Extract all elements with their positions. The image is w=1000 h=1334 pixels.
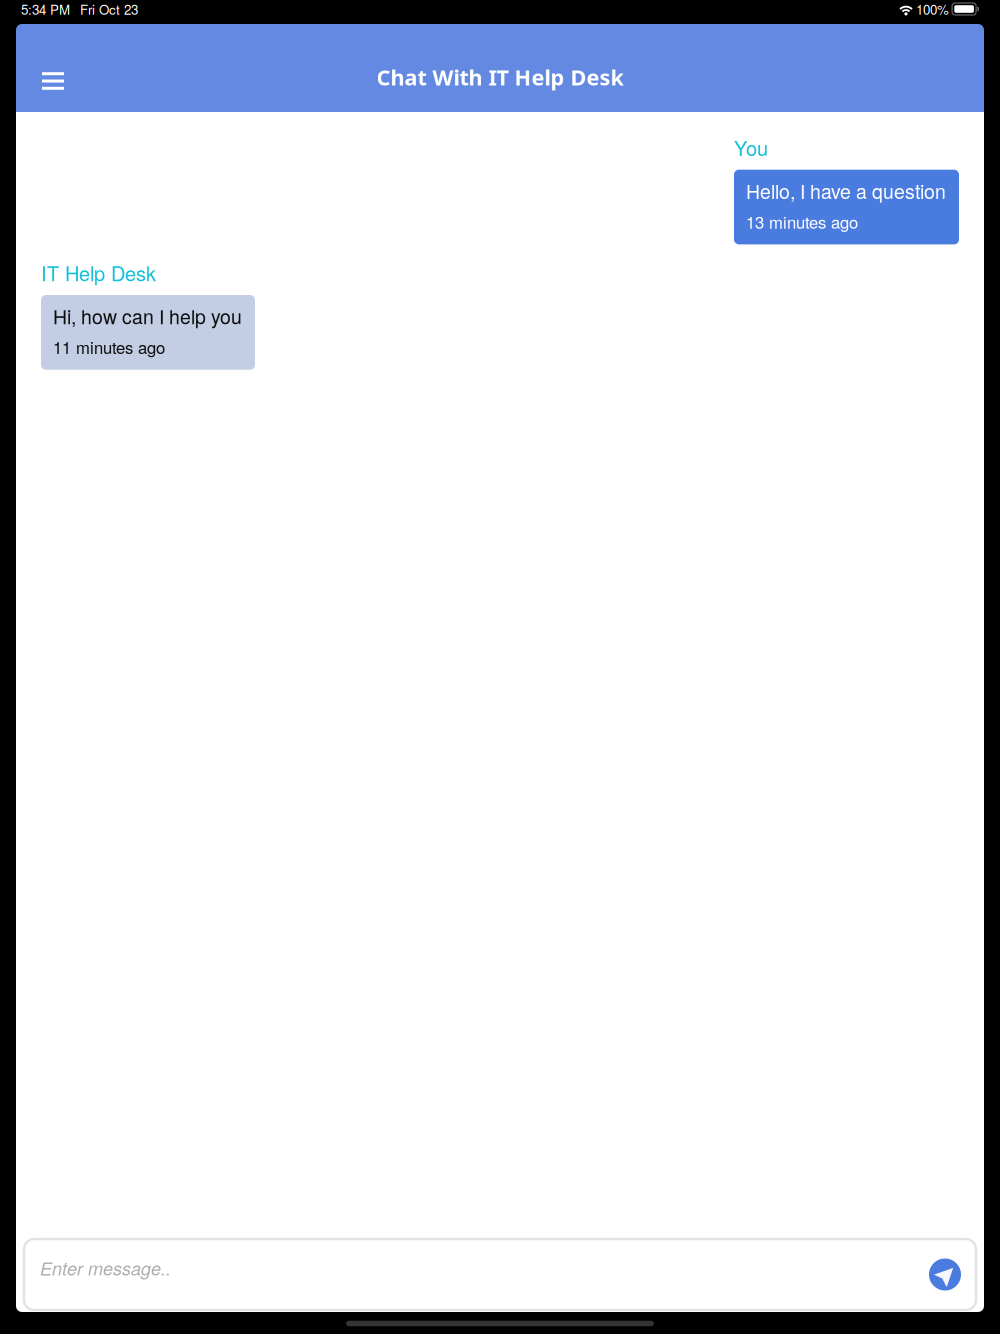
staticText: Fri Oct 23 bbox=[80, 0, 138, 19]
staticText: Hi, how can I help you bbox=[53, 302, 242, 330]
button[interactable]: Menu bbox=[16, 36, 86, 100]
staticText: You bbox=[734, 133, 768, 162]
button[interactable]: Send bbox=[921, 1250, 969, 1298]
staticText: 11 minutes ago bbox=[53, 335, 165, 359]
staticText: 100% bbox=[916, 0, 949, 19]
staticText: IT Help Desk bbox=[41, 258, 156, 287]
staticText: 5:34 PM bbox=[21, 0, 70, 19]
staticText: Enter message.. bbox=[40, 1255, 171, 1281]
staticText: Chat With IT Help Desk bbox=[376, 62, 623, 92]
staticText: Hello, I have a question bbox=[746, 177, 946, 204]
staticText: 13 minutes ago bbox=[746, 209, 858, 233]
button[interactable]: Enter message.. bbox=[24, 1238, 921, 1310]
